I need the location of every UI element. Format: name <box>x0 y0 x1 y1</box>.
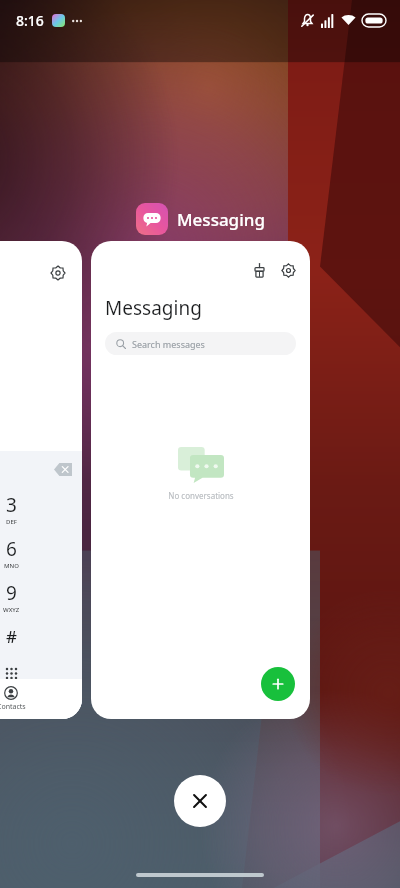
button[interactable]: Search messages <box>105 332 296 355</box>
staticText: WXYZ <box>3 606 20 614</box>
staticText: Messaging <box>177 208 265 231</box>
button[interactable]: New conversation <box>261 667 295 701</box>
staticText: 9 <box>6 580 17 606</box>
button[interactable]: Clean up <box>91 241 310 719</box>
other: Phone settings <box>50 265 66 281</box>
staticText: 6 <box>6 536 17 562</box>
button[interactable]: Settings <box>281 263 296 278</box>
button[interactable]: Phone settings <box>0 241 82 719</box>
staticText: No conversations <box>168 490 234 501</box>
staticText: 8:16 <box>16 11 44 30</box>
staticText: Messaging <box>105 295 202 321</box>
button[interactable]: Clean up <box>252 263 267 278</box>
staticText: Search messages <box>132 338 205 350</box>
staticText: 3 <box>6 492 17 518</box>
button[interactable]: Contacts <box>0 679 82 719</box>
staticText: Contacts <box>0 702 26 712</box>
staticText: # <box>6 625 17 648</box>
staticText: MNO <box>4 562 19 570</box>
button[interactable]: Clear all <box>174 775 226 827</box>
staticText: DEF <box>6 518 17 526</box>
